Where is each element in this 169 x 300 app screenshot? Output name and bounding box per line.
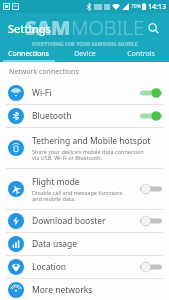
staticText: Flight mode [32, 176, 80, 188]
button[interactable]: Connections [0, 46, 57, 62]
staticText: Connections [8, 49, 49, 59]
button[interactable]: Flight mode [0, 169, 169, 210]
staticText: EVERYTHING FOR YOUR SAMSUNG MOBILE [32, 41, 138, 48]
button[interactable]: Toggle on [140, 110, 162, 122]
staticText: Controls [127, 49, 155, 59]
button[interactable]: Data usage [0, 233, 169, 256]
staticText: Data usage [32, 238, 78, 250]
button[interactable]: Bluetooth [0, 105, 169, 128]
staticText: Settings [8, 21, 51, 36]
button[interactable]: Toggle off [140, 183, 162, 195]
staticText: Device [74, 49, 96, 59]
button[interactable]: Download booster [0, 210, 169, 233]
button[interactable]: More networks [0, 279, 169, 300]
button[interactable]: Controls [113, 46, 169, 62]
staticText: MOBILE [71, 14, 144, 41]
staticText: 70% [131, 3, 141, 10]
staticText: Download booster [32, 215, 106, 227]
staticText: More networks [32, 284, 93, 296]
staticText: Wi-Fi [32, 87, 52, 99]
staticText: Share your device's mobile data connecti… [32, 148, 144, 162]
staticText: Bluetooth [32, 110, 72, 122]
staticText: 14:13 [148, 2, 166, 12]
button[interactable]: Location [0, 256, 169, 279]
button[interactable]: Tethering and Mobile hotspot [0, 128, 169, 169]
button[interactable]: Toggle on [140, 87, 162, 99]
button[interactable]: Search [143, 18, 163, 38]
button[interactable]: Toggle off [140, 261, 162, 273]
button[interactable]: Wi-Fi [0, 82, 169, 105]
staticText: Network connections [9, 67, 79, 77]
staticText: Location [32, 261, 67, 273]
button[interactable]: Device [57, 46, 113, 62]
staticText: Disable call and message functions and m… [32, 189, 123, 203]
staticText: Tethering and Mobile hotspot [32, 135, 151, 147]
button[interactable]: Toggle off [140, 215, 162, 227]
staticText: SAM [25, 14, 71, 41]
